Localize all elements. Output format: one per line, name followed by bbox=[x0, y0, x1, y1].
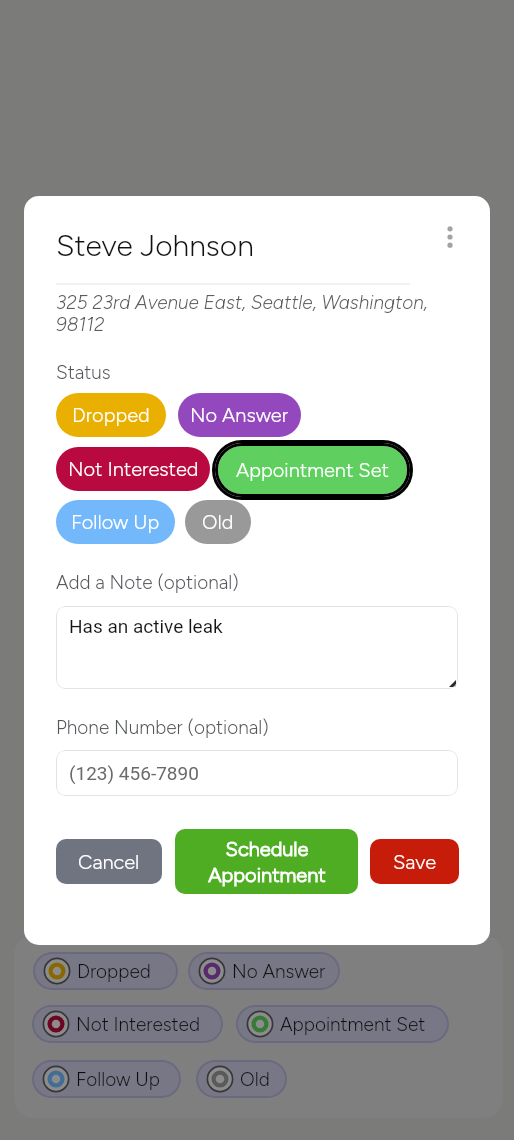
staticText: No Answer bbox=[232, 960, 326, 983]
staticText: Not Interested bbox=[68, 457, 199, 481]
button[interactable]: No Answer bbox=[188, 952, 340, 990]
button[interactable]: No Answer bbox=[178, 393, 301, 437]
button[interactable]: Dropped bbox=[33, 952, 178, 990]
staticText: Save bbox=[393, 850, 437, 874]
staticText: Schedule Appointment bbox=[208, 837, 326, 887]
button[interactable]: Not Interested bbox=[32, 1005, 223, 1043]
staticText: Phone Number (optional) bbox=[56, 716, 269, 739]
staticText: No Answer bbox=[190, 403, 289, 427]
button[interactable]: Not Interested bbox=[56, 447, 210, 491]
button[interactable]: More options bbox=[433, 220, 467, 254]
staticText: Dropped bbox=[77, 960, 151, 983]
staticText: Status bbox=[56, 361, 111, 384]
staticText: Has an active leak bbox=[69, 615, 223, 637]
button[interactable]: Appointment Set bbox=[218, 446, 407, 494]
staticText: Add a Note (optional) bbox=[56, 571, 239, 594]
button[interactable]: Follow Up bbox=[56, 500, 175, 544]
button[interactable]: Schedule Appointment bbox=[175, 829, 358, 894]
staticText: (123) 456-7890 bbox=[69, 762, 199, 784]
button[interactable]: Cancel bbox=[56, 839, 162, 884]
staticText: Appointment Set bbox=[236, 458, 389, 482]
button[interactable]: Follow Up bbox=[32, 1060, 181, 1098]
button[interactable]: Dropped bbox=[56, 393, 166, 437]
staticText: Dropped bbox=[72, 403, 150, 427]
staticText: Old bbox=[240, 1068, 270, 1091]
staticText: Old bbox=[202, 510, 234, 534]
staticText: Cancel bbox=[78, 850, 140, 874]
button[interactable]: Appointment Set bbox=[236, 1005, 449, 1043]
staticText: Not Interested bbox=[76, 1013, 200, 1036]
button[interactable]: Old bbox=[185, 500, 251, 544]
button[interactable]: (123) 456-7890 bbox=[56, 750, 458, 796]
button[interactable]: Save bbox=[370, 839, 459, 884]
staticText: Steve Johnson bbox=[56, 227, 254, 263]
staticText: Appointment Set bbox=[280, 1013, 426, 1036]
button[interactable]: Old bbox=[196, 1060, 287, 1098]
staticText: Follow Up bbox=[71, 510, 160, 534]
staticText: 325 23rd Avenue East, Seattle, Washingto… bbox=[56, 291, 456, 336]
staticText: Follow Up bbox=[76, 1068, 160, 1091]
button[interactable]: Has an active leak bbox=[56, 606, 458, 689]
